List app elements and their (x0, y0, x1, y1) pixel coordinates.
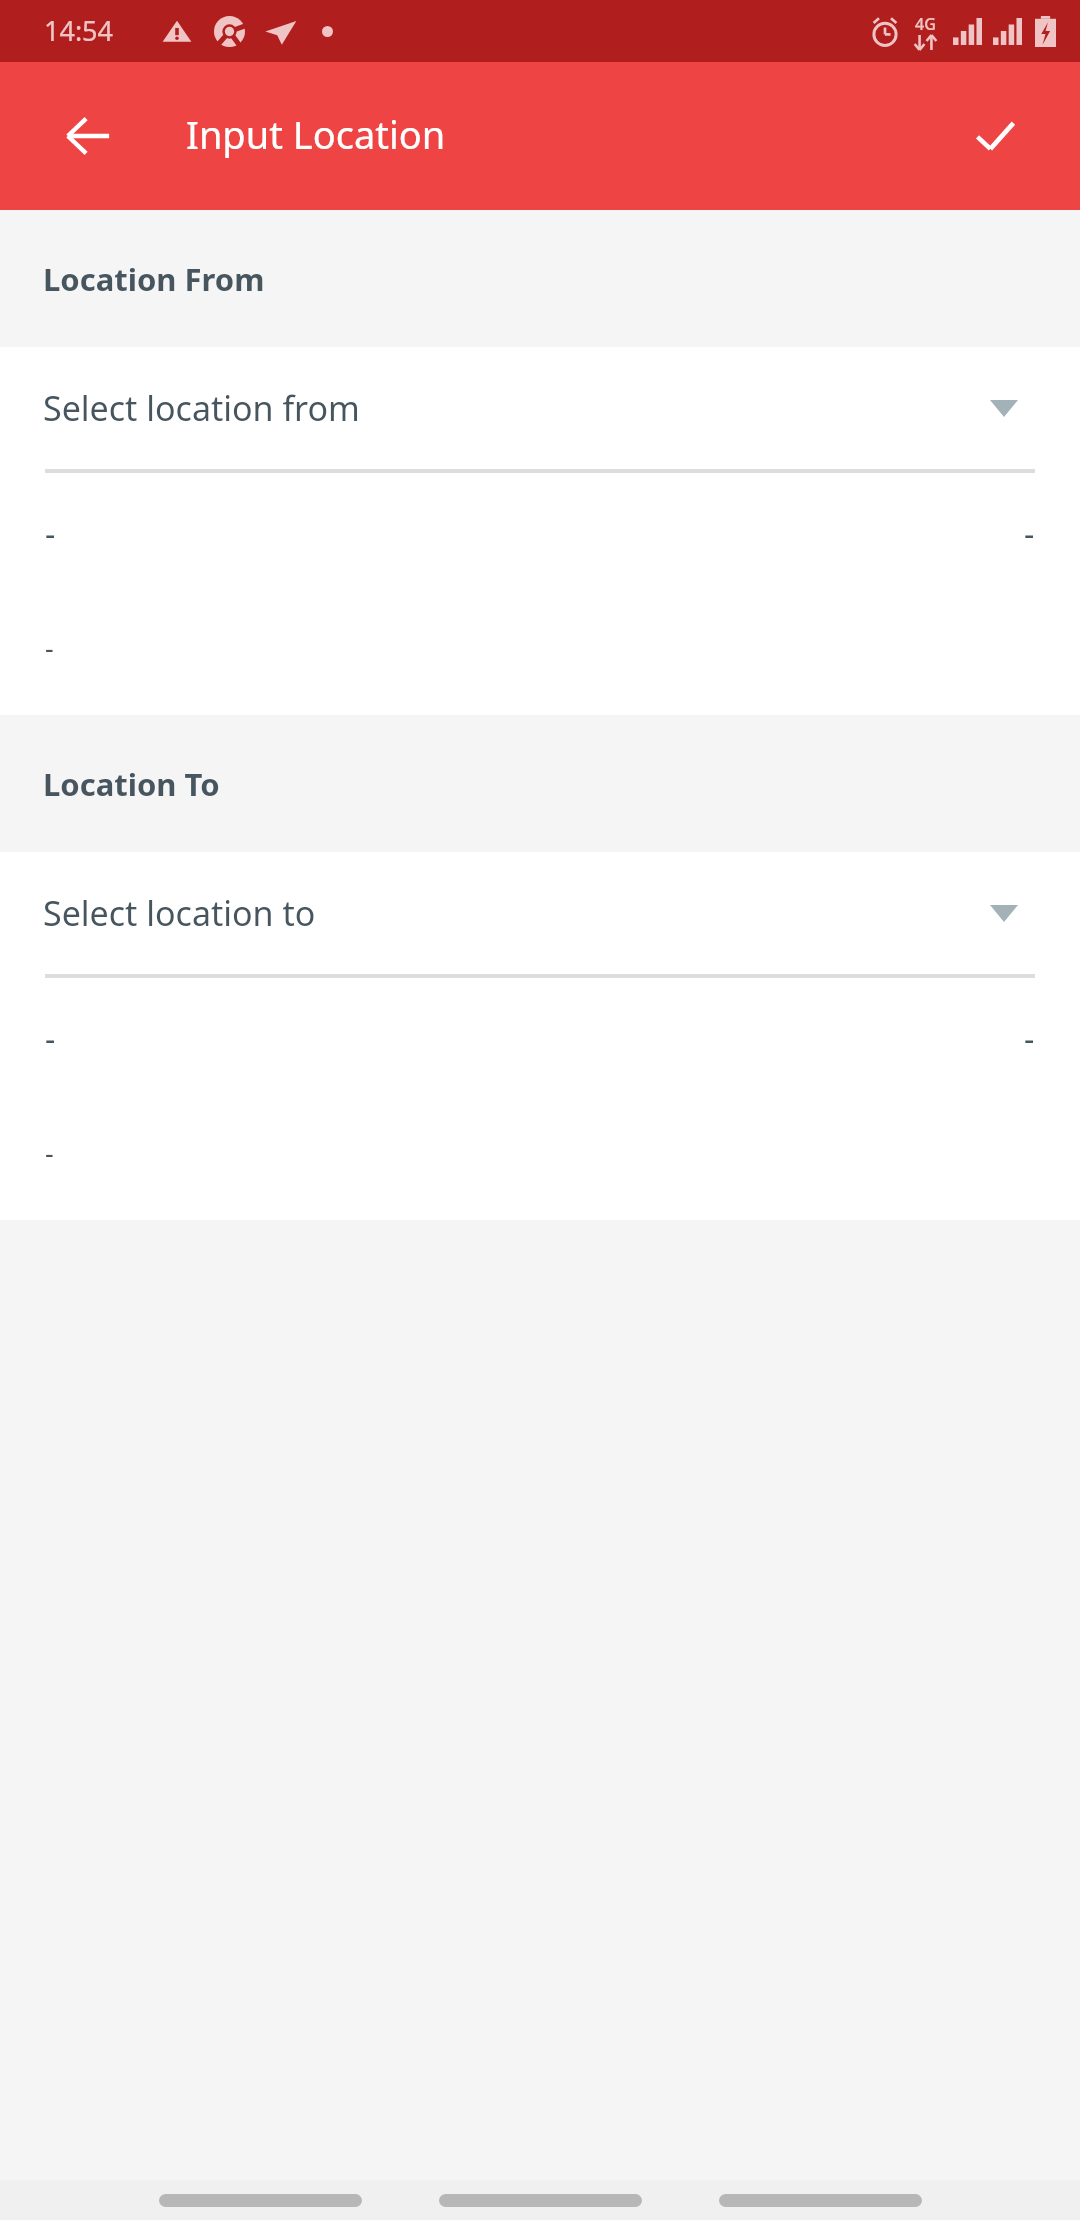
button[interactable]: Select location from (0, 347, 1080, 469)
staticText: - (45, 1134, 54, 1171)
button[interactable]: Home (439, 2194, 642, 2207)
staticText: Location From (43, 258, 265, 300)
button[interactable]: Navigate up (30, 78, 146, 194)
button[interactable]: Back (159, 2194, 362, 2207)
staticText: - (45, 512, 56, 556)
staticText: 4G (915, 13, 936, 35)
staticText: - (45, 1017, 56, 1061)
staticText: Input Location (186, 108, 446, 160)
staticText: Select location from (43, 385, 360, 431)
button[interactable]: Recent apps (719, 2194, 922, 2207)
staticText: - (1024, 1017, 1035, 1061)
button[interactable]: Confirm (940, 81, 1050, 191)
staticText: 14:54 (44, 12, 114, 49)
staticText: - (1024, 512, 1035, 556)
staticText: Select location to (43, 890, 316, 936)
button[interactable]: Select location to (0, 852, 1080, 974)
staticText: - (45, 629, 54, 666)
staticText: Location To (43, 763, 220, 805)
